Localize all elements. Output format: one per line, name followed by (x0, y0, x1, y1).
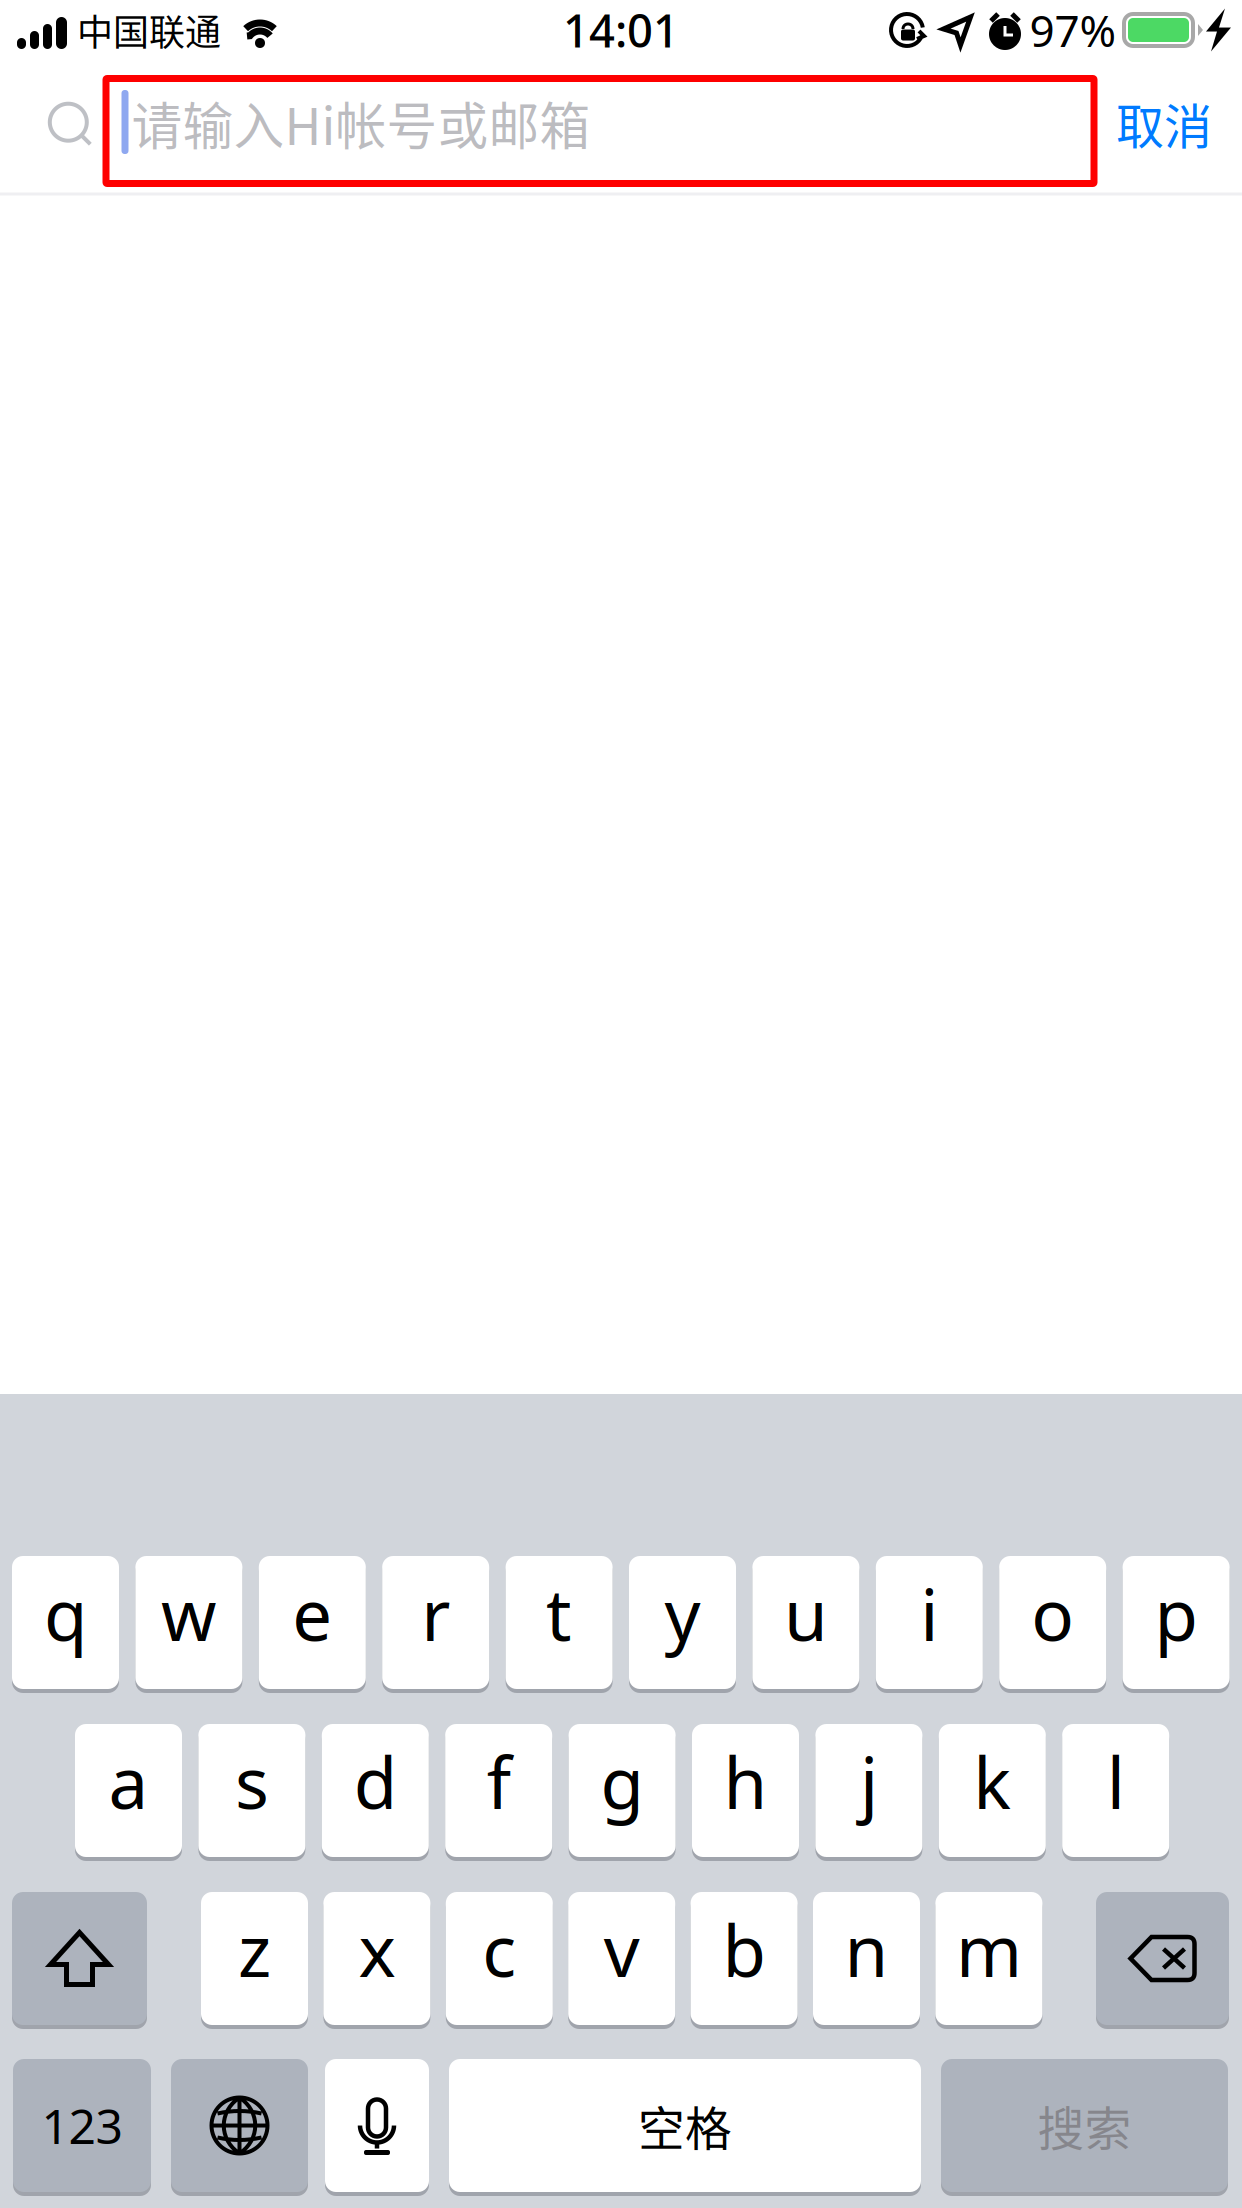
staticText: w (161, 1565, 217, 1662)
button[interactable]: y (629, 1554, 736, 1691)
button[interactable]: u (752, 1554, 859, 1691)
button[interactable]: Shift (12, 1890, 147, 2027)
staticText: m (956, 1901, 1022, 1998)
staticText: z (238, 1901, 271, 1998)
staticText: 97% (1029, 0, 1116, 60)
button[interactable]: f (445, 1722, 552, 1859)
button[interactable]: h (692, 1722, 799, 1859)
staticText: 中国联通 (77, 4, 221, 56)
button[interactable]: b (691, 1890, 798, 2027)
staticText: l (1107, 1733, 1125, 1830)
button[interactable]: Numbers (13, 2057, 151, 2194)
button[interactable]: a (75, 1722, 182, 1859)
staticText: 14:01 (563, 0, 679, 61)
staticText: e (292, 1565, 332, 1662)
staticText: a (108, 1733, 148, 1830)
staticText: g (601, 1733, 644, 1830)
button[interactable]: q (12, 1554, 119, 1691)
button[interactable]: s (198, 1722, 305, 1859)
staticText: j (860, 1733, 878, 1830)
button[interactable]: p (1123, 1554, 1230, 1691)
staticText: h (723, 1733, 767, 1830)
staticText: r (421, 1565, 450, 1662)
button[interactable]: i (876, 1554, 983, 1691)
button[interactable]: 请输入Hi帐号或邮箱 (102, 75, 1097, 187)
staticText: s (235, 1733, 269, 1830)
staticText: b (723, 1901, 766, 1998)
staticText: o (1031, 1565, 1074, 1662)
button[interactable]: 空格 (449, 2057, 921, 2194)
staticText: t (546, 1565, 572, 1662)
button[interactable]: e (259, 1554, 366, 1691)
button[interactable]: c (446, 1890, 553, 2027)
button[interactable]: v (568, 1890, 675, 2027)
staticText: p (1155, 1565, 1198, 1662)
staticText: 空格 (638, 2092, 732, 2159)
staticText: c (482, 1901, 516, 1998)
staticText: d (354, 1733, 397, 1830)
button[interactable]: g (569, 1722, 676, 1859)
staticText: y (664, 1565, 700, 1662)
staticText: v (604, 1901, 640, 1998)
button[interactable]: l (1062, 1722, 1169, 1859)
button[interactable]: Next keyboard (171, 2057, 308, 2194)
staticText: u (784, 1565, 828, 1662)
button[interactable]: j (815, 1722, 922, 1859)
button[interactable]: m (935, 1890, 1042, 2027)
button[interactable]: z (201, 1890, 308, 2027)
button[interactable]: k (939, 1722, 1046, 1859)
staticText: x (358, 1901, 395, 1998)
staticText: 搜索 (1037, 2092, 1131, 2159)
button[interactable]: n (813, 1890, 920, 2027)
staticText: q (44, 1565, 87, 1662)
staticText: 请输入Hi帐号或邮箱 (131, 86, 590, 160)
button[interactable]: Delete (1096, 1890, 1229, 2027)
button[interactable]: t (506, 1554, 613, 1691)
button[interactable]: r (382, 1554, 489, 1691)
staticText: f (487, 1733, 511, 1830)
button[interactable]: d (322, 1722, 429, 1859)
button[interactable]: Dictate (325, 2057, 429, 2194)
staticText: 123 (41, 2093, 122, 2158)
button[interactable]: 搜索 (941, 2057, 1228, 2194)
staticText: k (973, 1733, 1011, 1830)
staticText: i (920, 1565, 938, 1662)
button[interactable]: x (323, 1890, 430, 2027)
button[interactable]: w (135, 1554, 242, 1691)
staticText: n (844, 1901, 888, 1998)
button[interactable]: o (999, 1554, 1106, 1691)
staticText: 取消 (1116, 88, 1212, 158)
button[interactable]: 取消 (1099, 69, 1229, 177)
